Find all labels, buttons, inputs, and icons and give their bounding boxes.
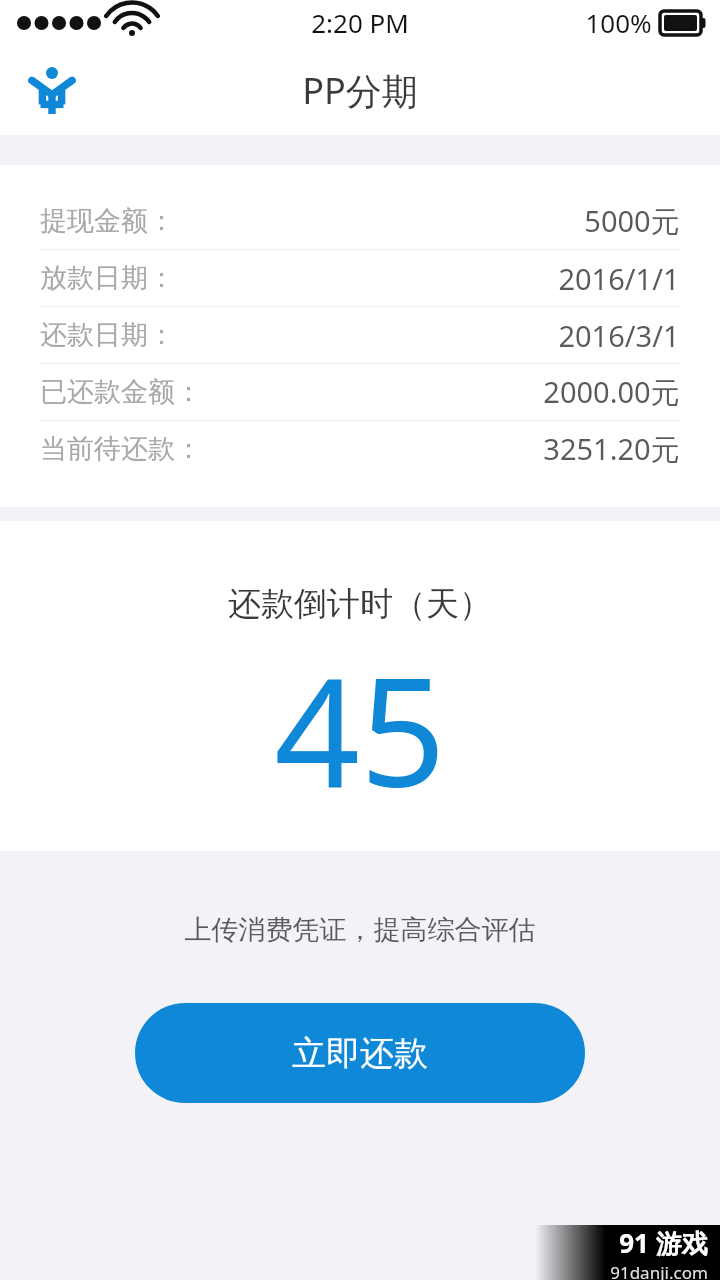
button[interactable]: 还款日期： <box>0 307 720 363</box>
staticText: 45 <box>0 627 720 831</box>
staticText: 91 游戏 <box>619 1225 708 1261</box>
button[interactable]: App home <box>20 58 84 122</box>
staticText: 2016/1/1 <box>558 259 680 298</box>
staticText: 还款日期： <box>40 318 175 352</box>
staticText: 上传消费凭证，提高综合评估 <box>0 913 720 947</box>
staticText: 2016/3/1 <box>558 316 680 355</box>
button[interactable]: 放款日期： <box>0 250 720 306</box>
staticText: 提现金额： <box>40 204 175 238</box>
staticText: 立即还款 <box>292 1032 428 1075</box>
staticText: 5000元 <box>584 201 680 241</box>
staticText: 当前待还款： <box>40 432 202 466</box>
staticText: 还款倒计时（天） <box>0 583 720 625</box>
button[interactable]: 当前待还款： <box>0 421 720 477</box>
staticText: 2000.00元 <box>543 372 680 412</box>
staticText: 放款日期： <box>40 261 175 295</box>
staticText: 3251.20元 <box>543 429 680 469</box>
staticText: 100% <box>585 5 652 40</box>
staticText: 2:20 PM <box>311 5 409 40</box>
button[interactable]: 已还款金额： <box>0 364 720 420</box>
button[interactable]: 立即还款 <box>135 1003 585 1103</box>
button[interactable]: 提现金额： <box>0 193 720 249</box>
staticText: 已还款金额： <box>40 375 202 409</box>
staticText: PP分期 <box>302 66 418 115</box>
staticText: 91danji.com <box>610 1261 708 1280</box>
